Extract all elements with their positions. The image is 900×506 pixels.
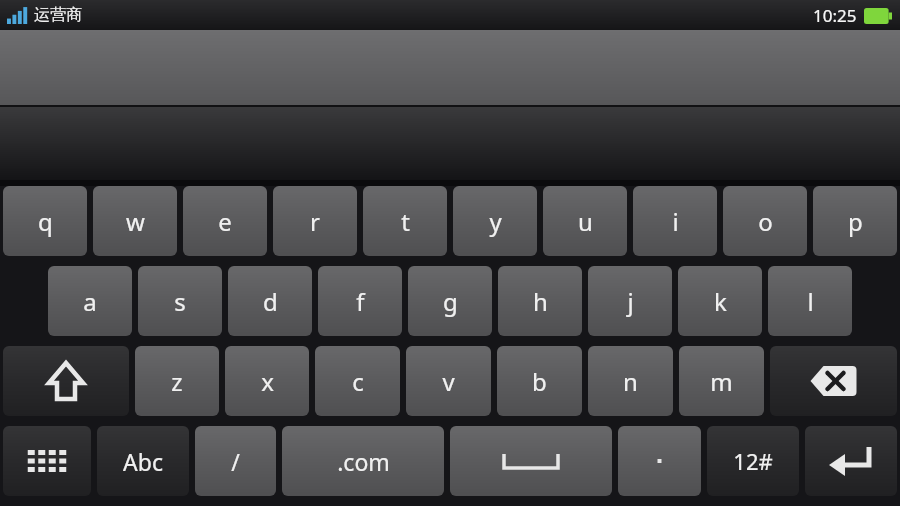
button[interactable]: a: [48, 266, 132, 336]
button[interactable]: p: [813, 186, 897, 256]
button[interactable]: x: [225, 346, 309, 416]
button[interactable]: f: [318, 266, 402, 336]
button[interactable]: Switch keyboard: [3, 426, 91, 496]
button[interactable]: m: [679, 346, 764, 416]
staticText: l: [807, 285, 814, 318]
staticText: p: [848, 205, 863, 238]
staticText: x: [261, 365, 274, 398]
staticText: .com: [337, 446, 390, 477]
staticText: d: [263, 285, 278, 318]
button[interactable]: 12#: [707, 426, 799, 496]
staticText: i: [672, 205, 679, 238]
staticText: t: [401, 205, 410, 238]
button[interactable]: Period: [618, 426, 701, 496]
button[interactable]: /: [195, 426, 276, 496]
button[interactable]: i: [633, 186, 717, 256]
button[interactable]: d: [228, 266, 312, 336]
staticText: Abc: [123, 446, 163, 477]
button[interactable]: z: [135, 346, 219, 416]
button[interactable]: o: [723, 186, 807, 256]
staticText: v: [442, 365, 455, 398]
staticText: c: [352, 365, 364, 398]
staticText: r: [310, 205, 320, 238]
staticText: m: [710, 365, 733, 398]
button[interactable]: Abc: [97, 426, 189, 496]
button[interactable]: l: [768, 266, 852, 336]
staticText: 12#: [733, 446, 773, 476]
staticText: o: [758, 205, 773, 238]
staticText: 运营商: [34, 5, 82, 25]
button[interactable]: h: [498, 266, 582, 336]
button[interactable]: .com: [282, 426, 444, 496]
staticText: /: [231, 446, 240, 477]
button[interactable]: y: [453, 186, 537, 256]
button[interactable]: w: [93, 186, 177, 256]
button[interactable]: k: [678, 266, 762, 336]
button[interactable]: v: [406, 346, 491, 416]
staticText: e: [218, 205, 232, 238]
staticText: q: [38, 205, 53, 238]
button[interactable]: g: [408, 266, 492, 336]
staticText: n: [623, 365, 638, 398]
staticText: a: [83, 285, 97, 318]
staticText: y: [489, 205, 502, 238]
staticText: j: [627, 285, 634, 318]
staticText: 10:25: [813, 4, 857, 27]
button[interactable]: Shift: [3, 346, 129, 416]
button[interactable]: n: [588, 346, 673, 416]
staticText: b: [532, 365, 547, 398]
button[interactable]: t: [363, 186, 447, 256]
button[interactable]: b: [497, 346, 582, 416]
staticText: s: [174, 285, 186, 318]
staticText: k: [714, 285, 727, 318]
button[interactable]: c: [315, 346, 400, 416]
staticText: z: [171, 365, 183, 398]
button[interactable]: s: [138, 266, 222, 336]
staticText: g: [443, 285, 458, 318]
button[interactable]: e: [183, 186, 267, 256]
staticText: h: [533, 285, 548, 318]
button[interactable]: u: [543, 186, 627, 256]
button[interactable]: Backspace: [770, 346, 897, 416]
staticText: f: [356, 285, 365, 318]
button[interactable]: q: [3, 186, 87, 256]
button[interactable]: r: [273, 186, 357, 256]
button[interactable]: Enter: [805, 426, 897, 496]
staticText: u: [578, 205, 593, 238]
staticText: w: [126, 205, 145, 238]
button[interactable]: Space: [450, 426, 612, 496]
button[interactable]: j: [588, 266, 672, 336]
